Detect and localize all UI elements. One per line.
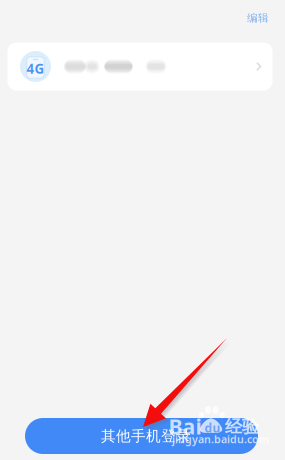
staticText: jingyan.baidu.com	[172, 432, 269, 446]
button[interactable]: 编辑	[238, 7, 278, 29]
staticText: 4G	[26, 60, 44, 77]
staticText: Bai	[168, 412, 201, 440]
staticText: 经验	[225, 416, 259, 437]
staticText: 编辑	[247, 11, 269, 24]
staticText: 其他手机登录	[101, 427, 191, 445]
staticText: du	[204, 420, 220, 436]
button[interactable]: 4G	[7, 42, 272, 90]
button[interactable]: 其他手机登录	[25, 418, 258, 454]
